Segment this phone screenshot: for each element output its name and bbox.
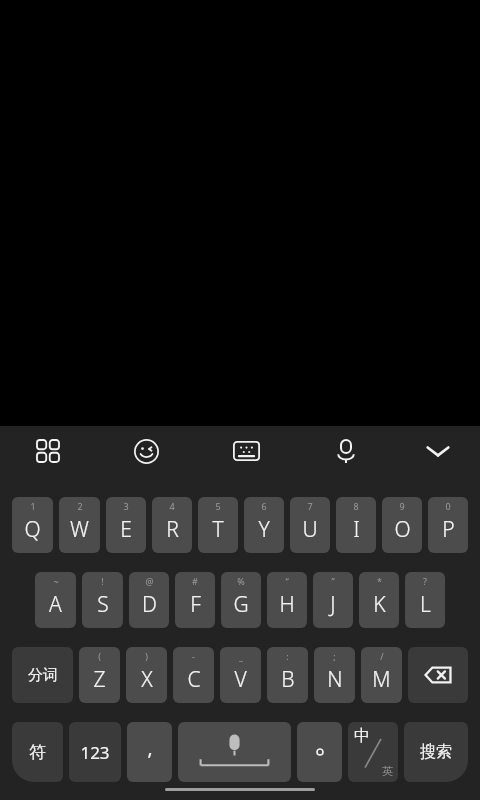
button[interactable]: Emoji [96,430,196,472]
staticText: 分词 [28,666,58,685]
staticText: C [187,665,201,694]
staticText: J [330,590,336,619]
button[interactable]: 0 [428,497,468,553]
staticText: O [394,515,411,544]
staticText: - [192,650,195,662]
button[interactable]: ” [313,572,353,628]
button[interactable]: 6 [244,497,284,553]
staticText: * [377,575,382,587]
staticText: 9 [399,500,405,512]
staticText: K [373,590,386,619]
button[interactable]: / [361,647,402,703]
button[interactable]: Voice input [296,430,396,472]
staticText: T [212,515,224,544]
staticText: ~ [53,575,59,587]
staticText: S [97,590,109,619]
staticText: “ [285,575,289,587]
staticText: X [141,665,153,694]
button[interactable]: 搜索 [404,722,468,782]
staticText: 123 [80,741,110,764]
staticText: _ [239,650,243,662]
staticText: ” [331,575,335,587]
staticText: ; [333,650,336,662]
staticText: 7 [307,500,313,512]
button[interactable]: 3 [106,497,146,553]
staticText: 6 [261,500,267,512]
staticText: Q [24,515,41,544]
staticText: H [279,590,295,619]
staticText: @ [145,575,154,587]
staticText: 5 [215,500,221,512]
button[interactable]: : [267,647,308,703]
staticText: 0 [445,500,451,512]
staticText: M [372,665,391,694]
button[interactable]: ) [126,647,167,703]
button[interactable]: ( [79,647,120,703]
staticText: L [420,590,431,619]
button[interactable]: 2 [59,497,100,553]
button[interactable]: Backspace [408,647,468,703]
staticText: 8 [353,500,359,512]
staticText: : [286,650,289,662]
staticText: E [120,515,132,544]
staticText: N [327,665,343,694]
staticText: 4 [169,500,175,512]
staticText: 符 [29,742,46,763]
button[interactable]: “ [267,572,307,628]
staticText: Z [93,665,106,694]
button[interactable]: Space [178,722,291,782]
button[interactable]: , [127,722,172,782]
button[interactable]: ~ [35,572,76,628]
button[interactable]: 123 [69,722,121,782]
staticText: ) [145,650,148,662]
staticText: W [70,515,89,544]
button[interactable]: Hide keyboard [396,430,480,472]
staticText: / [380,650,384,662]
button[interactable]: Keyboard menu [0,430,96,472]
staticText: G [233,590,249,619]
staticText: D [142,590,157,619]
button[interactable]: 4 [152,497,192,553]
button[interactable]: 分词 [12,647,73,703]
button[interactable]: % [221,572,261,628]
staticText: 2 [77,500,83,512]
button[interactable]: ! [82,572,123,628]
staticText: 中 [354,726,370,746]
staticText: Y [258,515,270,544]
button[interactable]: @ [129,572,169,628]
button[interactable]: 5 [198,497,238,553]
staticText: 1 [30,500,36,512]
button[interactable]: Chinese English toggle [348,722,398,782]
button[interactable]: 8 [336,497,376,553]
button[interactable]: 符 [12,722,63,782]
button[interactable]: ? [405,572,445,628]
staticText: # [192,575,198,587]
staticText: 英 [382,764,393,778]
staticText: % [237,575,245,587]
staticText: A [49,590,62,619]
button[interactable]: - [173,647,214,703]
button[interactable]: ; [314,647,355,703]
button[interactable]: Switch keyboard [196,430,296,472]
staticText: ! [101,575,104,587]
button[interactable]: 7 [290,497,330,553]
staticText: R [166,515,179,544]
button[interactable]: # [175,572,215,628]
staticText: ( [98,650,101,662]
button[interactable]: _ [220,647,261,703]
button[interactable]: 9 [382,497,422,553]
staticText: I [353,515,360,544]
staticText: , [147,735,153,761]
staticText: ? [423,575,427,587]
staticText: V [234,665,247,694]
button[interactable]: * [359,572,399,628]
staticText: 3 [123,500,129,512]
staticText: F [190,590,201,619]
staticText: U [302,515,318,544]
staticText: P [442,515,455,544]
button[interactable]: 1 [12,497,53,553]
button[interactable] [297,722,342,782]
staticText: 搜索 [420,742,452,762]
staticText: B [281,665,295,694]
